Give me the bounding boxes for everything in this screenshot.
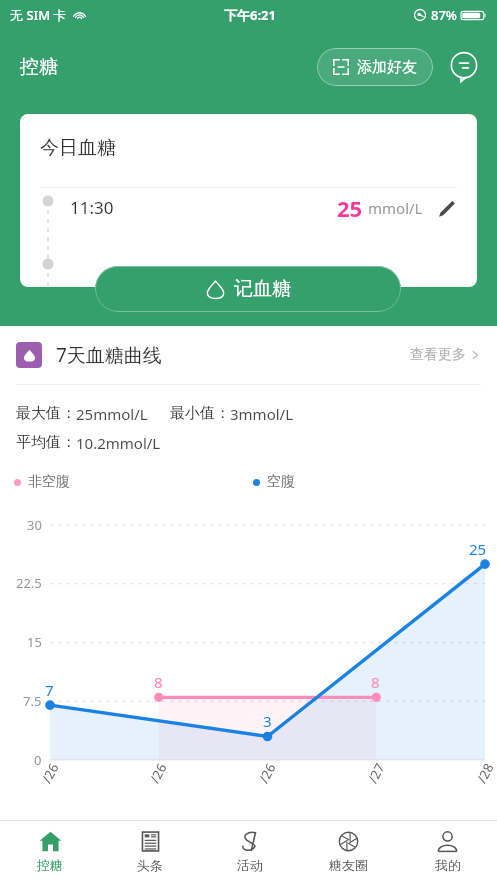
button[interactable]: Messages: [443, 46, 485, 88]
staticText: 查看更多: [410, 346, 466, 364]
staticText: 控糖: [37, 857, 63, 873]
staticText: 3mmol/L: [230, 404, 294, 424]
button[interactable]: 记血糖: [95, 266, 401, 312]
staticText: 3: [263, 711, 272, 731]
staticText: 8: [371, 672, 380, 692]
staticText: 11:30: [70, 196, 114, 219]
staticText: 我的: [435, 857, 461, 873]
staticText: 今日血糖: [40, 136, 116, 160]
staticText: 头条: [137, 857, 163, 873]
staticText: 记血糖: [234, 277, 291, 301]
staticText: /28: [472, 760, 497, 786]
staticText: 0: [34, 751, 42, 769]
staticText: 8: [154, 672, 163, 692]
staticText: 7: [45, 680, 54, 700]
staticText: /26: [37, 760, 63, 786]
staticText: 25mmol/L: [76, 404, 148, 424]
staticText: /27: [363, 760, 389, 786]
staticText: 添加好友: [357, 58, 417, 77]
staticText: 活动: [237, 857, 263, 873]
staticText: 87%: [431, 6, 457, 24]
button[interactable]: Edit: [435, 197, 457, 219]
button[interactable]: 7天血糖曲线: [0, 326, 497, 384]
staticText: mmol/L: [368, 198, 423, 218]
staticText: 25: [469, 539, 487, 559]
staticText: 平均值：: [16, 433, 76, 452]
staticText: 无 SIM 卡: [10, 6, 67, 24]
staticText: 控糖: [20, 55, 58, 79]
staticText: 糖友圈: [329, 857, 368, 873]
staticText: 22.5: [16, 574, 42, 592]
button[interactable]: 活动: [200, 821, 299, 883]
staticText: 7天血糖曲线: [56, 342, 162, 368]
staticText: 最小值：: [170, 404, 230, 423]
button[interactable]: 控糖: [0, 821, 100, 883]
staticText: 15: [27, 633, 42, 651]
staticText: 非空腹: [28, 473, 70, 491]
staticText: 25: [337, 193, 363, 223]
staticText: /26: [145, 760, 171, 786]
staticText: 7.5: [23, 692, 42, 710]
button[interactable]: 11:30: [20, 187, 477, 287]
button[interactable]: 添加好友: [317, 48, 433, 86]
button[interactable]: 我的: [398, 821, 497, 883]
staticText: 空腹: [267, 473, 295, 491]
staticText: 10.2mmol/L: [76, 433, 161, 453]
staticText: 最大值：: [16, 404, 76, 423]
staticText: /26: [254, 760, 280, 786]
staticText: 30: [27, 516, 42, 534]
button[interactable]: 头条: [100, 821, 200, 883]
button[interactable]: 糖友圈: [299, 821, 398, 883]
staticText: 下午6:21: [224, 6, 276, 24]
